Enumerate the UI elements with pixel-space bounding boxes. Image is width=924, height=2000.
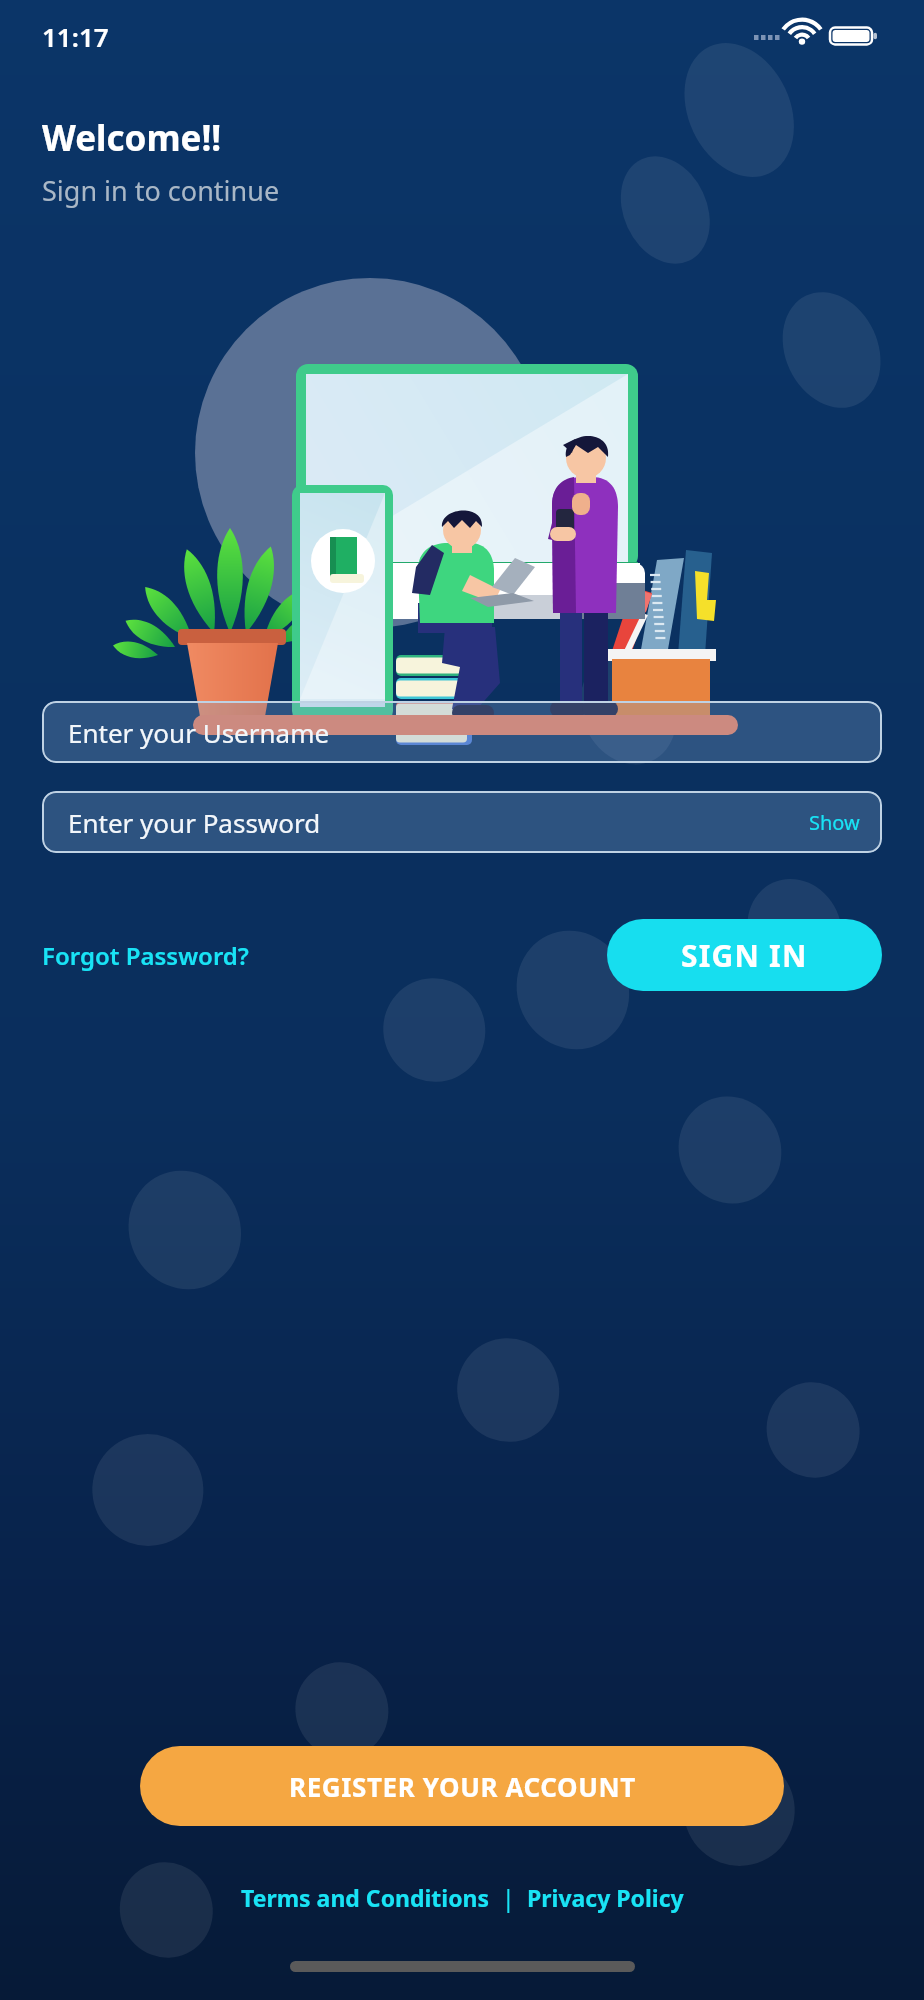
button[interactable]: Forgot Password? — [42, 939, 249, 972]
button[interactable]: Enter your Password — [42, 791, 882, 853]
button[interactable]: REGISTER YOUR ACCOUNT — [140, 1746, 784, 1826]
staticText: 11:17 — [42, 19, 109, 54]
button[interactable]: Privacy Policy — [527, 1882, 684, 1913]
button[interactable]: SIGN IN — [607, 919, 882, 991]
staticText: Enter your Password — [68, 805, 321, 840]
button[interactable]: Terms and Conditions — [241, 1882, 490, 1913]
staticText: SIGN IN — [681, 935, 808, 976]
staticText: Terms and Conditions — [241, 1882, 490, 1913]
staticText: Enter your Username — [68, 715, 330, 750]
staticText: Forgot Password? — [42, 939, 249, 972]
staticText: Privacy Policy — [527, 1882, 684, 1913]
button[interactable]: Enter your Username — [42, 701, 882, 763]
staticText: | — [490, 1882, 527, 1913]
staticText: Show — [809, 809, 860, 836]
staticText: Sign in to continue — [42, 172, 280, 209]
staticText: Welcome!! — [42, 114, 222, 162]
staticText: REGISTER YOUR ACCOUNT — [289, 1769, 636, 1804]
button[interactable]: Show — [787, 791, 882, 853]
